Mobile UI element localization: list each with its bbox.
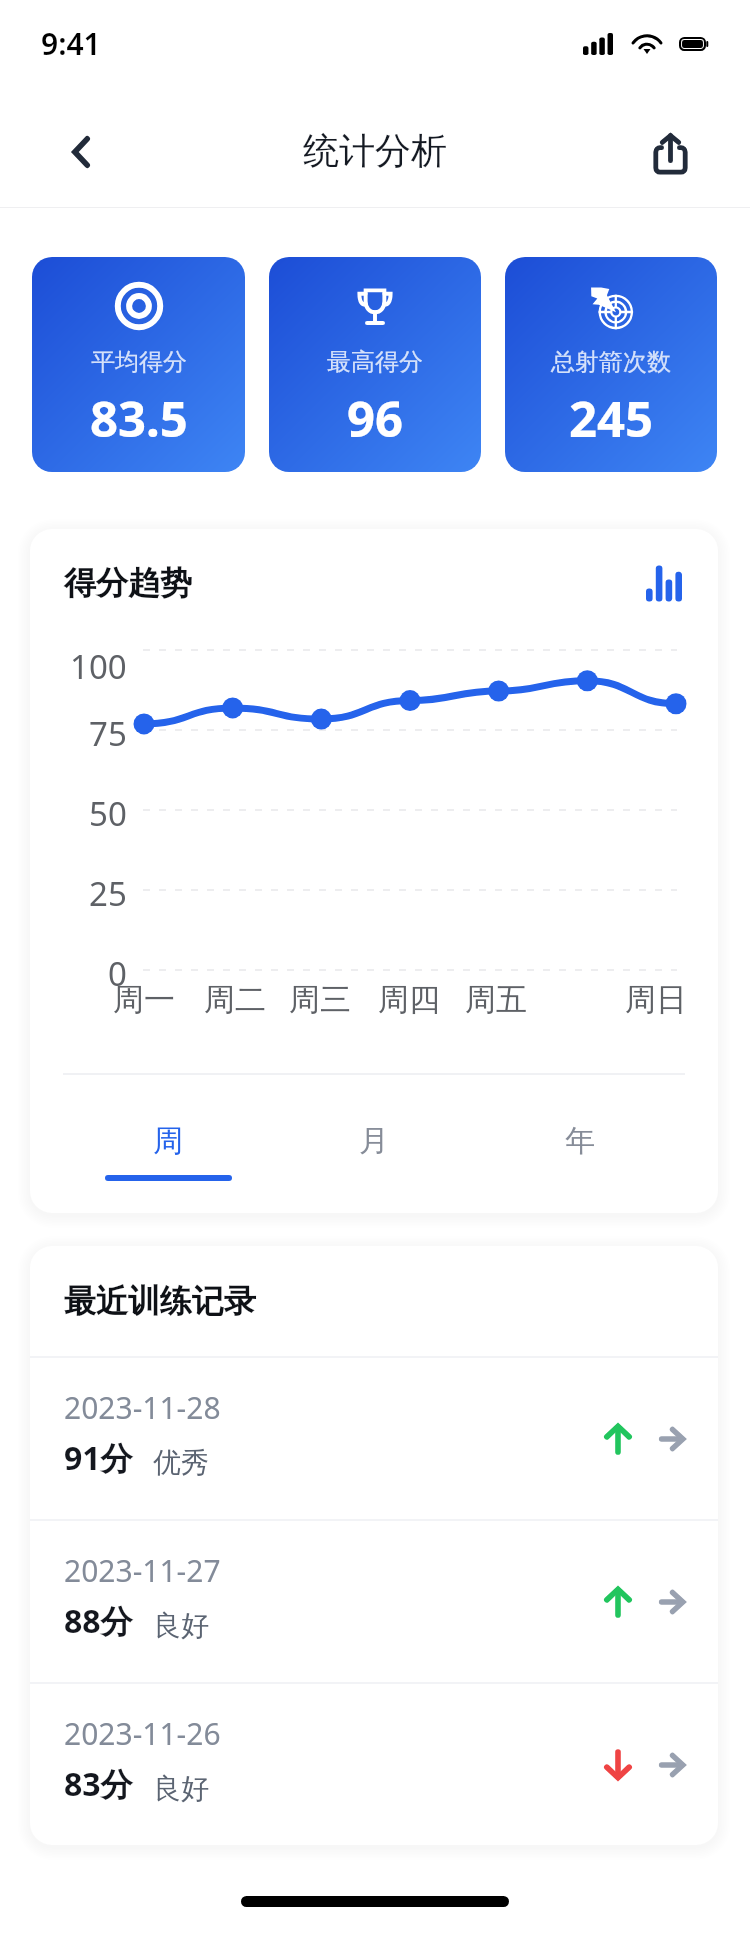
button[interactable]: 平均得分 [32, 257, 245, 472]
staticText: 周四 [378, 980, 440, 1019]
staticText: 0 [108, 951, 127, 996]
staticText: 96 [347, 385, 404, 452]
staticText: 得分趋势 [64, 563, 192, 603]
staticText: 周 [153, 1122, 183, 1160]
staticText: 245 [569, 385, 654, 452]
staticText: 统计分析 [303, 128, 447, 173]
staticText: 2023-11-28 [64, 1387, 221, 1428]
button[interactable]: 最高得分 [269, 257, 481, 472]
button[interactable]: Chart type [640, 559, 688, 607]
staticText: 91分 [64, 1436, 133, 1480]
button[interactable]: 月 [271, 1122, 477, 1181]
button[interactable]: 总射箭次数 [505, 257, 717, 472]
button[interactable]: 周 [65, 1122, 271, 1181]
staticText: 平均得分 [91, 347, 187, 377]
staticText: 周二 [204, 980, 266, 1019]
staticText: 良好 [153, 1608, 209, 1643]
staticText: 最近训练记录 [64, 1281, 256, 1321]
staticText: 2023-11-26 [64, 1713, 221, 1754]
button[interactable]: Back [52, 125, 110, 183]
staticText: 良好 [153, 1771, 209, 1806]
staticText: 最高得分 [327, 347, 423, 377]
staticText: 75 [89, 711, 127, 756]
staticText: 年 [565, 1122, 595, 1160]
staticText: 83分 [64, 1762, 133, 1806]
button[interactable]: 年 [477, 1122, 683, 1181]
staticText: 周五 [465, 980, 527, 1019]
button[interactable]: 2023-11-27 [30, 1521, 718, 1682]
staticText: 优秀 [153, 1445, 209, 1480]
staticText: 9:41 [41, 23, 101, 64]
staticText: 25 [89, 871, 127, 916]
staticText: 周一 [113, 980, 175, 1019]
button[interactable]: 2023-11-26 [30, 1684, 718, 1845]
staticText: 月 [359, 1122, 389, 1160]
staticText: 83.5 [90, 385, 188, 452]
staticText: 周三 [289, 980, 351, 1019]
staticText: 总射箭次数 [551, 347, 671, 377]
staticText: 88分 [64, 1599, 133, 1643]
button[interactable]: 2023-11-28 [30, 1358, 718, 1519]
staticText: 100 [70, 644, 127, 689]
staticText: 50 [89, 791, 127, 836]
button[interactable]: Share [641, 125, 699, 183]
staticText: 2023-11-27 [64, 1550, 221, 1591]
staticText: 周日 [625, 980, 687, 1019]
